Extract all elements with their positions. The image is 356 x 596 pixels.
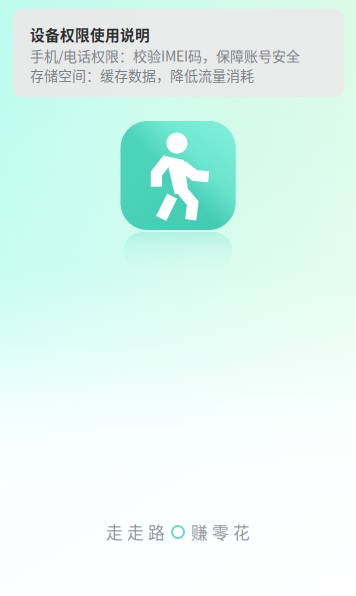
staticText: 走 走 路	[106, 520, 165, 544]
staticText: 存储空间：缓存数据，降低流量消耗	[30, 65, 254, 85]
staticText: 设备权限使用说明	[30, 24, 150, 45]
staticText: 赚 零 花	[191, 520, 250, 544]
staticText: 手机/电话权限：校验IMEI码，保障账号安全	[30, 45, 300, 66]
